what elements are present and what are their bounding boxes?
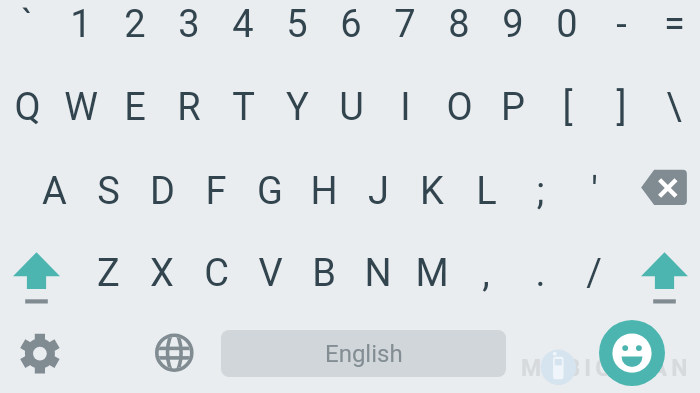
staticText: ,: [482, 251, 490, 296]
staticText: O: [446, 85, 473, 130]
staticText: Z: [97, 251, 120, 296]
staticText: 9: [502, 2, 524, 47]
button[interactable]: `: [0, 0, 54, 66]
staticText: 5: [286, 2, 308, 47]
button[interactable]: 6: [324, 0, 378, 66]
staticText: A: [42, 169, 67, 214]
button[interactable]: C: [189, 232, 243, 313]
button[interactable]: X: [135, 232, 189, 313]
staticText: 4: [232, 2, 254, 47]
staticText: English: [325, 340, 403, 368]
button[interactable]: \: [648, 66, 700, 149]
button[interactable]: F: [189, 149, 243, 232]
button[interactable]: A: [27, 149, 81, 232]
staticText: Y: [286, 85, 309, 130]
button[interactable]: I: [378, 66, 432, 149]
staticText: 2: [124, 2, 146, 47]
button[interactable]: .: [513, 232, 567, 313]
staticText: P: [501, 85, 525, 130]
button[interactable]: E: [108, 66, 162, 149]
staticText: ': [591, 169, 598, 214]
button[interactable]: T: [216, 66, 270, 149]
button[interactable]: Q: [0, 66, 54, 149]
button[interactable]: 2: [108, 0, 162, 66]
button[interactable]: ': [567, 149, 621, 232]
staticText: N: [364, 251, 392, 296]
staticText: T: [232, 85, 255, 130]
button[interactable]: V: [243, 232, 297, 313]
staticText: F: [205, 169, 227, 214]
button[interactable]: 5: [270, 0, 324, 66]
button[interactable]: U: [324, 66, 378, 149]
staticText: R: [177, 85, 201, 130]
button[interactable]: [: [540, 66, 594, 149]
staticText: \: [666, 85, 682, 130]
staticText: ]: [616, 85, 627, 130]
staticText: L: [476, 169, 497, 214]
staticText: ;: [536, 169, 545, 214]
staticText: W: [64, 85, 98, 130]
button[interactable]: P: [486, 66, 540, 149]
button[interactable]: 0: [540, 0, 594, 66]
staticText: [: [562, 85, 573, 130]
button[interactable]: Shift: [628, 232, 700, 313]
staticText: J: [368, 169, 389, 214]
staticText: Q: [14, 85, 41, 130]
staticText: MOBIGYAAN: [521, 355, 692, 382]
staticText: 0: [556, 2, 578, 47]
button[interactable]: 9: [486, 0, 540, 66]
button[interactable]: Change input language: [135, 313, 211, 393]
staticText: /: [586, 251, 602, 296]
staticText: E: [124, 85, 146, 130]
button[interactable]: H: [297, 149, 351, 232]
staticText: 8: [448, 2, 470, 47]
button[interactable]: D: [135, 149, 189, 232]
button[interactable]: G: [243, 149, 297, 232]
staticText: X: [150, 251, 174, 296]
staticText: U: [339, 85, 364, 130]
button[interactable]: 8: [432, 0, 486, 66]
button[interactable]: 1: [54, 0, 108, 66]
button[interactable]: Backspace: [621, 149, 698, 232]
staticText: 6: [340, 2, 362, 47]
staticText: S: [97, 169, 120, 214]
button[interactable]: 7: [378, 0, 432, 66]
staticText: .: [535, 251, 546, 296]
button[interactable]: Emoji keyboard: [599, 320, 665, 386]
button[interactable]: ,: [459, 232, 513, 313]
staticText: =: [664, 2, 685, 47]
staticText: I: [400, 85, 411, 130]
button[interactable]: M: [405, 232, 459, 313]
button[interactable]: /: [567, 232, 621, 313]
button[interactable]: O: [432, 66, 486, 149]
button[interactable]: K: [405, 149, 459, 232]
staticText: M: [415, 251, 449, 296]
staticText: H: [310, 169, 338, 214]
button[interactable]: N: [351, 232, 405, 313]
staticText: B: [312, 251, 336, 296]
button[interactable]: =: [648, 0, 700, 66]
button[interactable]: Y: [270, 66, 324, 149]
button[interactable]: S: [81, 149, 135, 232]
button[interactable]: English: [221, 330, 506, 377]
staticText: `: [21, 2, 33, 47]
staticText: D: [150, 169, 175, 214]
staticText: K: [420, 169, 444, 214]
button[interactable]: 3: [162, 0, 216, 66]
button[interactable]: Shift: [0, 232, 73, 313]
staticText: C: [204, 251, 229, 296]
button[interactable]: W: [54, 66, 108, 149]
button[interactable]: L: [459, 149, 513, 232]
staticText: G: [257, 169, 283, 214]
button[interactable]: ]: [594, 66, 648, 149]
staticText: 1: [70, 2, 92, 47]
button[interactable]: -: [594, 0, 648, 66]
button[interactable]: 4: [216, 0, 270, 66]
button[interactable]: J: [351, 149, 405, 232]
button[interactable]: Z: [81, 232, 135, 313]
button[interactable]: B: [297, 232, 351, 313]
button[interactable]: R: [162, 66, 216, 149]
button[interactable]: Settings: [0, 313, 135, 393]
staticText: 3: [178, 2, 200, 47]
button[interactable]: ;: [513, 149, 567, 232]
